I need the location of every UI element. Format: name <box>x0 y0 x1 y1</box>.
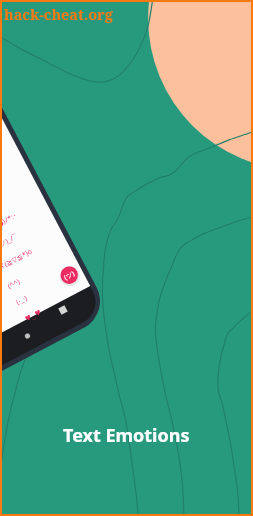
button[interactable] <box>0 0 253 516</box>
